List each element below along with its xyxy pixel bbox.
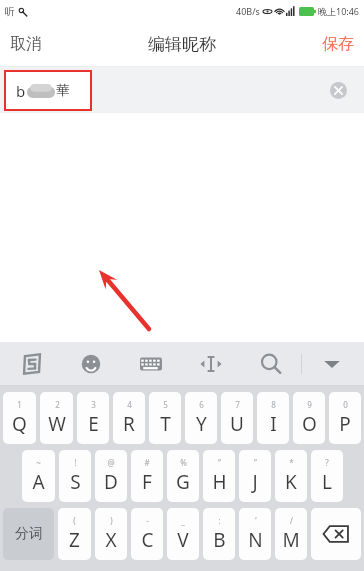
button[interactable]: _ bbox=[167, 508, 199, 560]
staticText: S bbox=[70, 469, 81, 495]
button[interactable]: : bbox=[203, 508, 235, 560]
button[interactable]: 5 bbox=[149, 392, 181, 444]
staticText: D bbox=[104, 469, 118, 495]
staticText: 8 bbox=[271, 399, 276, 410]
staticText: 保存 bbox=[322, 34, 354, 54]
button[interactable]: 3 bbox=[77, 392, 109, 444]
staticText: 2 bbox=[55, 399, 60, 410]
button[interactable]: # bbox=[131, 450, 163, 502]
staticText: 6 bbox=[199, 399, 204, 410]
button[interactable]: 9 bbox=[293, 392, 325, 444]
staticText: ’ bbox=[255, 515, 257, 526]
button[interactable]: % bbox=[167, 450, 199, 502]
button[interactable]: ~ bbox=[22, 450, 55, 502]
button[interactable]: 4 bbox=[113, 392, 145, 444]
button[interactable]: ? bbox=[311, 450, 343, 502]
staticText: F bbox=[142, 469, 152, 495]
staticText: R bbox=[123, 411, 135, 437]
button[interactable]: ) bbox=[95, 508, 127, 560]
staticText: X bbox=[105, 527, 117, 553]
button[interactable]: @ bbox=[95, 450, 127, 502]
staticText: 编辑昵称 bbox=[148, 34, 216, 55]
staticText: N bbox=[248, 527, 263, 553]
staticText: G bbox=[176, 469, 190, 495]
staticText: * bbox=[289, 457, 294, 468]
staticText: U bbox=[230, 411, 244, 437]
button[interactable]: 收起键盘 bbox=[302, 342, 362, 386]
button[interactable]: - bbox=[131, 508, 163, 560]
staticText: ( bbox=[73, 515, 76, 526]
staticText: H bbox=[212, 469, 227, 495]
button[interactable]: 清除 bbox=[324, 76, 352, 104]
staticText: 3 bbox=[91, 399, 96, 410]
staticText: 听 bbox=[5, 5, 15, 18]
button[interactable]: ’ bbox=[239, 508, 271, 560]
button[interactable]: 2 bbox=[40, 392, 73, 444]
staticText: 40B/s bbox=[236, 5, 260, 17]
button[interactable]: b bbox=[6, 72, 90, 109]
button[interactable]: “ bbox=[203, 450, 235, 502]
staticText: M bbox=[282, 527, 300, 553]
button[interactable]: ( bbox=[58, 508, 91, 560]
staticText: E bbox=[88, 411, 99, 437]
button[interactable]: 1 bbox=[3, 392, 36, 444]
staticText: I bbox=[270, 411, 277, 437]
staticText: Z bbox=[69, 527, 80, 553]
button[interactable]: 搜索 bbox=[241, 342, 301, 386]
staticText: 0 bbox=[343, 399, 348, 410]
staticText: 4 bbox=[127, 399, 132, 410]
button[interactable]: 6 bbox=[185, 392, 217, 444]
staticText: 7 bbox=[235, 399, 240, 410]
staticText: ~ bbox=[36, 457, 41, 468]
button[interactable]: 退格 bbox=[311, 508, 361, 560]
staticText: b bbox=[16, 81, 26, 101]
staticText: ” bbox=[254, 457, 257, 468]
button[interactable]: 移动光标 bbox=[181, 342, 241, 386]
staticText: 晚上10:46 bbox=[318, 5, 360, 17]
staticText: L bbox=[322, 469, 332, 495]
button[interactable]: 7 bbox=[221, 392, 253, 444]
staticText: C bbox=[141, 527, 154, 553]
staticText: V bbox=[177, 527, 189, 553]
staticText: % bbox=[180, 457, 187, 468]
button[interactable]: ! bbox=[59, 450, 91, 502]
staticText: 9 bbox=[307, 399, 312, 410]
staticText: ! bbox=[74, 457, 77, 468]
staticText: ) bbox=[110, 515, 113, 526]
staticText: J bbox=[252, 469, 258, 495]
button[interactable]: * bbox=[275, 450, 307, 502]
button[interactable]: 输入法 bbox=[2, 342, 61, 386]
staticText: T bbox=[160, 411, 171, 437]
staticText: Y bbox=[196, 411, 207, 437]
button[interactable]: ” bbox=[239, 450, 271, 502]
staticText: : bbox=[218, 515, 221, 526]
staticText: “ bbox=[218, 457, 221, 468]
button[interactable]: / bbox=[275, 508, 307, 560]
button[interactable]: 键盘 bbox=[121, 342, 181, 386]
staticText: 1 bbox=[17, 399, 22, 410]
staticText: Q bbox=[12, 411, 27, 437]
staticText: A bbox=[32, 469, 45, 495]
staticText: B bbox=[213, 527, 226, 553]
button[interactable]: 表情 bbox=[61, 342, 121, 386]
staticText: 取消 bbox=[10, 34, 42, 54]
staticText: / bbox=[290, 515, 293, 526]
button[interactable]: 8 bbox=[257, 392, 289, 444]
staticText: O bbox=[302, 411, 317, 437]
staticText: P bbox=[339, 411, 351, 437]
staticText: - bbox=[146, 515, 149, 526]
staticText: @ bbox=[107, 457, 115, 468]
staticText: # bbox=[144, 457, 150, 468]
button[interactable]: 取消 bbox=[0, 22, 52, 66]
button[interactable]: 0 bbox=[329, 392, 361, 444]
staticText: ? bbox=[325, 457, 329, 468]
staticText: 5 bbox=[163, 399, 168, 410]
staticText: _ bbox=[181, 515, 185, 526]
staticText: 分词 bbox=[15, 525, 43, 543]
button[interactable]: 保存 bbox=[312, 22, 364, 66]
staticText: W bbox=[48, 411, 66, 437]
staticText: K bbox=[285, 469, 297, 495]
staticText: 華 bbox=[56, 82, 70, 100]
button[interactable]: 分词 bbox=[3, 508, 54, 560]
